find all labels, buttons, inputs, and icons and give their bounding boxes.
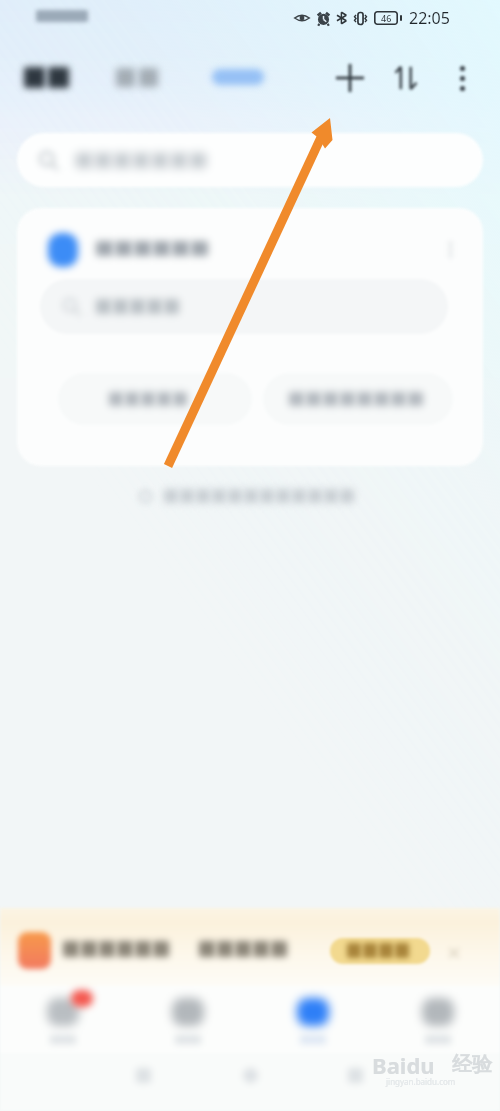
staticText: 46: [381, 12, 392, 24]
button[interactable]: Tab three: [207, 63, 269, 91]
button[interactable]: Tab two: [112, 64, 168, 92]
button[interactable]: Close: [446, 945, 462, 961]
button[interactable]: [17, 133, 483, 187]
button[interactable]: [58, 373, 252, 425]
button[interactable]: [0, 908, 500, 988]
button[interactable]: Home: [243, 1068, 258, 1083]
staticText: 经验: [452, 1052, 492, 1077]
button[interactable]: [263, 373, 453, 425]
button[interactable]: Me: [375, 986, 500, 1053]
button[interactable]: Discover: [250, 986, 375, 1053]
staticText: 22:05: [409, 7, 450, 29]
button[interactable]: Open: [330, 938, 430, 964]
staticText: jingyan.baidu.com: [386, 1076, 456, 1087]
button[interactable]: Tab one: [20, 62, 78, 94]
button[interactable]: Chats: [0, 986, 125, 1053]
button[interactable]: More options: [440, 56, 484, 100]
button[interactable]: Add: [328, 56, 372, 100]
button[interactable]: [40, 279, 448, 334]
staticText: Baidu: [372, 1050, 435, 1080]
button[interactable]: Sort: [384, 56, 428, 100]
button[interactable]: Contacts: [125, 986, 250, 1053]
button[interactable]: Back: [136, 1068, 151, 1083]
button[interactable]: Recents: [348, 1068, 363, 1083]
